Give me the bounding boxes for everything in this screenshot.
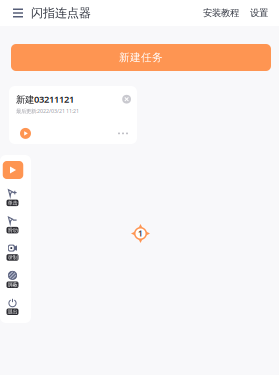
staticText: 1 [138, 228, 143, 239]
button[interactable]: 点位 1 [131, 224, 150, 243]
button[interactable]: 安装教程 [199, 0, 243, 26]
button[interactable]: 单击 [0, 184, 31, 211]
button[interactable]: 屏蔽 [0, 266, 31, 293]
button[interactable]: 设置 [243, 0, 279, 26]
staticText: 屏蔽 [7, 281, 17, 288]
button[interactable]: 新建任务 [11, 44, 271, 71]
button[interactable]: 菜单 [0, 0, 31, 26]
staticText: 最后更新:2022/03/21 11:21 [16, 107, 79, 114]
staticText: 安装教程 [203, 7, 239, 19]
button[interactable]: 录制 [0, 239, 31, 266]
staticText: 单击 [7, 200, 17, 206]
staticText: 录制 [7, 254, 17, 261]
staticText: 退出 [7, 308, 17, 315]
staticText: 新建03211121 [16, 93, 74, 105]
button[interactable]: 更多操作 [112, 128, 134, 139]
button[interactable]: 删除任务 [122, 95, 131, 104]
button[interactable]: 退出 [0, 293, 31, 320]
staticText: 闪指连点器 [31, 6, 91, 20]
button[interactable]: 滑动 [0, 211, 31, 239]
staticText: 新建任务 [119, 51, 163, 64]
button[interactable]: 新建03211121 [9, 86, 137, 144]
button[interactable]: 开始运行 [3, 161, 23, 179]
button[interactable]: 运行任务 [20, 128, 31, 139]
staticText: 设置 [250, 7, 268, 19]
staticText: 滑动 [7, 227, 17, 233]
